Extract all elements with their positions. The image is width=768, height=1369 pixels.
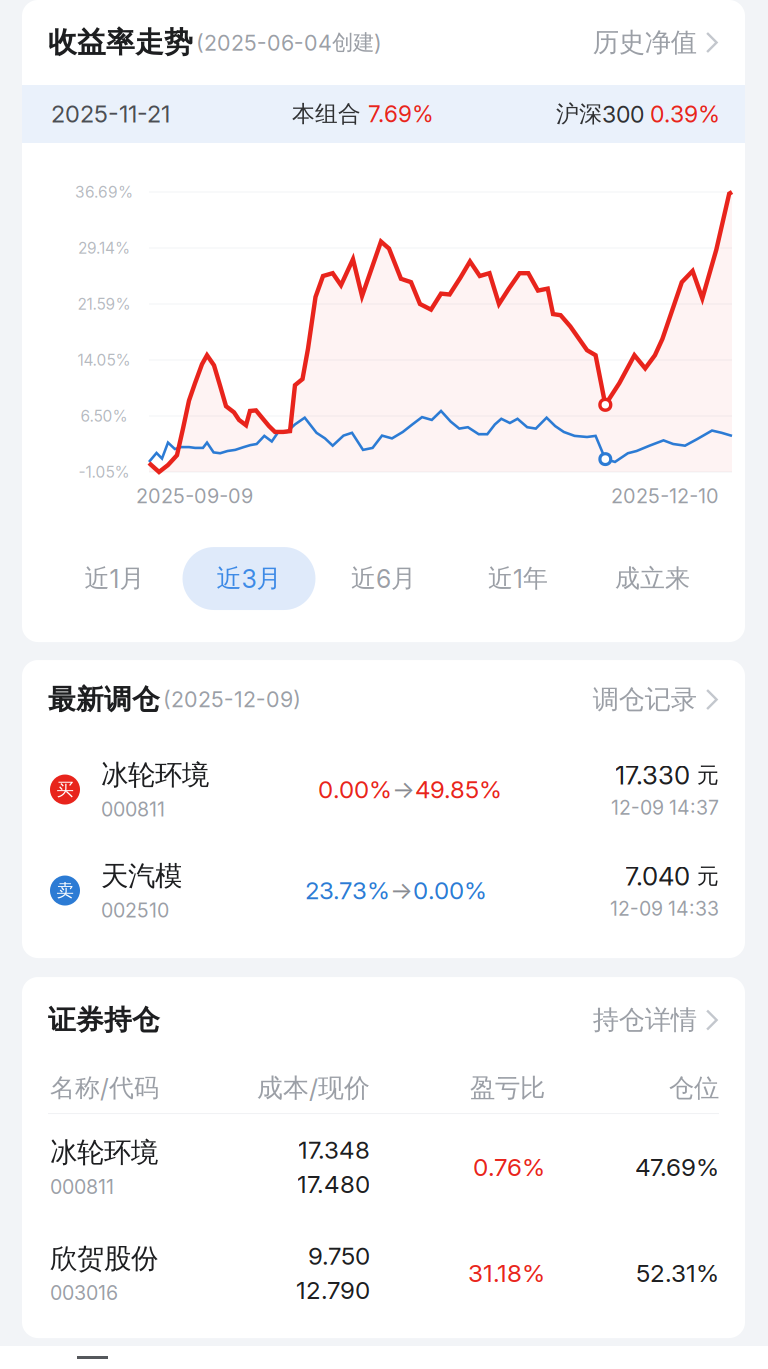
staticText: 7.69% <box>368 100 434 128</box>
staticText: 12-09 14:33 <box>610 897 719 920</box>
staticText: 0.76% <box>473 1152 545 1182</box>
staticText: 沪深300 <box>556 99 650 129</box>
staticText: 2025-11-21 <box>51 100 170 128</box>
button[interactable]: 近1月 <box>48 547 181 610</box>
staticText: 盈亏比 <box>470 1072 545 1104</box>
staticText: 冰轮环境 <box>101 758 209 792</box>
staticText: 23.73% <box>305 876 390 905</box>
staticText: 天汽模 <box>101 859 182 893</box>
staticText: 近3月 <box>216 563 281 594</box>
button[interactable]: 欣贺股份 <box>22 1220 745 1326</box>
staticText: 14.05% <box>77 351 130 369</box>
staticText: → <box>392 775 415 804</box>
staticText: 17.348 <box>298 1135 370 1165</box>
staticText: 12-09 14:37 <box>611 796 719 819</box>
staticText: 收益率走势 <box>48 24 193 60</box>
staticText: 调仓记录 <box>593 683 697 716</box>
staticText: 52.31% <box>636 1258 719 1288</box>
staticText: 31.18% <box>468 1258 545 1288</box>
staticText: 卖 <box>56 880 73 901</box>
staticText: 持仓详情 <box>593 1003 697 1037</box>
staticText: 17.330 <box>615 760 690 791</box>
staticText: 成本/现价 <box>257 1072 370 1104</box>
staticText: (2025-12-09) <box>163 687 301 713</box>
button[interactable]: 成立来 <box>586 547 719 610</box>
button[interactable]: 买 <box>22 739 745 840</box>
staticText: 元 <box>690 762 719 789</box>
staticText: 欣贺股份 <box>50 1241 158 1276</box>
staticText: 9.750 <box>308 1241 370 1271</box>
staticText: 近6月 <box>351 563 416 594</box>
button[interactable]: 近6月 <box>317 547 450 610</box>
staticText: 最新调仓 <box>48 682 160 717</box>
staticText: 36.69% <box>75 183 133 201</box>
button[interactable]: 近3月 <box>182 547 315 610</box>
staticText: 元 <box>690 863 719 890</box>
staticText: 0.39% <box>650 100 720 128</box>
staticText: → <box>390 876 413 905</box>
button[interactable]: 持仓详情 <box>593 1003 719 1037</box>
staticText: 买 <box>56 779 73 800</box>
staticText: 003016 <box>50 1281 118 1305</box>
staticText: 002510 <box>101 898 169 922</box>
button[interactable]: 调仓记录 <box>593 683 719 716</box>
staticText: 0.00% <box>318 775 392 804</box>
staticText: 29.14% <box>78 239 130 257</box>
staticText: (2025-06-04创建) <box>196 29 382 56</box>
staticText: 7.040 <box>625 861 690 892</box>
staticText: 000811 <box>50 1175 114 1199</box>
staticText: 证券持仓 <box>48 1003 160 1037</box>
staticText: 名称/代码 <box>50 1072 159 1104</box>
staticText: 仓位 <box>669 1072 719 1104</box>
staticText: 2025-12-10 <box>611 484 719 508</box>
staticText: 本组合 <box>292 100 368 128</box>
button[interactable]: 近1年 <box>451 547 584 610</box>
staticText: 47.69% <box>635 1152 719 1182</box>
staticText: 12.790 <box>296 1275 370 1305</box>
staticText: 21.59% <box>77 295 130 313</box>
staticText: 6.50% <box>80 407 127 425</box>
staticText: 2025-09-09 <box>136 484 253 508</box>
staticText: 近1年 <box>488 563 548 594</box>
staticText: 冰轮环境 <box>50 1135 158 1170</box>
button[interactable]: 卖 <box>22 840 745 941</box>
staticText: 17.480 <box>297 1169 370 1199</box>
staticText: -1.05% <box>78 463 129 481</box>
staticText: 近1月 <box>84 563 144 594</box>
staticText: 0.00% <box>413 876 487 905</box>
staticText: 历史净值 <box>593 26 697 59</box>
staticText: 成立来 <box>615 563 690 594</box>
button[interactable]: 冰轮环境 <box>22 1114 745 1220</box>
staticText: 000811 <box>101 797 165 821</box>
button[interactable]: 历史净值 <box>593 26 719 59</box>
staticText: 49.85% <box>415 775 502 804</box>
